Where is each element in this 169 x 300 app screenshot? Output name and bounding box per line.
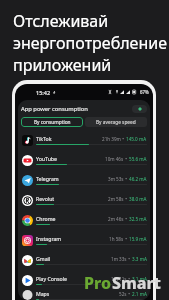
staticText: 3.3 mA xyxy=(132,256,147,262)
staticText: • xyxy=(127,291,132,297)
staticText: TikTok xyxy=(36,135,52,142)
staticText: 10m 46s xyxy=(105,156,124,162)
staticText: 3m 53s xyxy=(108,176,124,182)
staticText: 15.9 mA xyxy=(129,236,147,242)
staticText: 67% xyxy=(140,89,149,95)
staticText: • xyxy=(124,156,129,162)
button[interactable]: Maps xyxy=(21,290,147,300)
button[interactable]: Instagram xyxy=(21,230,147,250)
staticText: 2m 46s xyxy=(108,216,124,222)
staticText: Maps xyxy=(36,290,50,297)
button[interactable]: TikTok xyxy=(21,130,147,150)
staticText: Pro xyxy=(84,272,112,294)
staticText: Отслеживай xyxy=(13,10,109,32)
staticText: • xyxy=(124,176,129,182)
staticText: 1h 58s xyxy=(109,236,124,242)
staticText: Instagram xyxy=(36,235,62,242)
button[interactable]: Gmail xyxy=(21,250,147,270)
staticText: 21h 39m xyxy=(102,136,121,142)
button[interactable]: YouTube xyxy=(21,150,147,170)
staticText: 15:42 xyxy=(36,89,51,96)
staticText: • xyxy=(121,136,126,142)
staticText: • xyxy=(124,216,129,222)
button[interactable]: Telegram xyxy=(21,170,147,190)
button[interactable]: Battery optimization xyxy=(132,105,147,113)
staticText: 2m 58s xyxy=(108,196,124,202)
staticText: энергопотребление xyxy=(13,32,167,54)
staticText: • xyxy=(127,276,132,282)
staticText: 1m 11s xyxy=(111,276,127,282)
staticText: Telegram xyxy=(36,175,59,182)
staticText: • xyxy=(124,236,129,242)
button[interactable]: Revolut xyxy=(21,190,147,210)
staticText: Chrome xyxy=(36,215,56,222)
button[interactable]: By average speed xyxy=(85,117,147,127)
staticText: App power consumption xyxy=(21,105,88,113)
staticText: 52s xyxy=(119,291,127,297)
staticText: Revolut xyxy=(36,195,55,202)
staticText: 46.2 mA xyxy=(129,176,147,182)
staticText: 2.1 mA xyxy=(132,291,147,297)
button[interactable]: Chrome xyxy=(21,210,147,230)
button[interactable]: By consumption xyxy=(21,117,83,127)
staticText: 55.6 mA xyxy=(129,156,147,162)
staticText: • xyxy=(124,196,129,202)
staticText: • xyxy=(127,256,132,262)
staticText: 1m 33s xyxy=(111,256,127,262)
staticText: YouTube xyxy=(36,155,57,162)
staticText: Smart xyxy=(112,272,161,294)
staticText: 38.0 mA xyxy=(129,196,147,202)
staticText: 3.1 mA xyxy=(132,276,147,282)
staticText: 32.5 mA xyxy=(129,216,147,222)
staticText: Play Console xyxy=(36,275,67,282)
button[interactable]: Play Console xyxy=(21,270,147,290)
staticText: приложений xyxy=(13,54,112,76)
staticText: By consumption xyxy=(34,119,71,126)
staticText: Gmail xyxy=(36,255,51,262)
staticText: By average speed xyxy=(96,119,136,126)
staticText: 145.0 mA xyxy=(126,136,147,142)
